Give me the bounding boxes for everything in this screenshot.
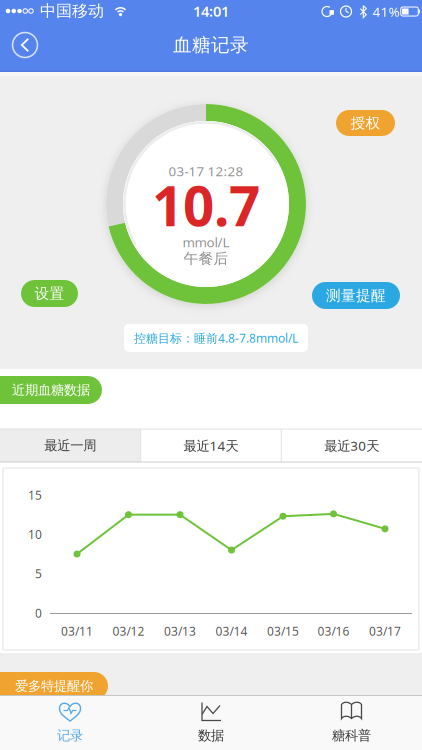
staticText: 糖科普 (332, 727, 371, 744)
staticText: 03-17 12:28 (168, 162, 243, 180)
staticText: 测量提醒 (326, 286, 386, 304)
staticText: 血糖记录 (173, 33, 249, 56)
staticText: 0 (35, 605, 42, 621)
staticText: 控糖目标：睡前4.8-7.8mmol/L (134, 330, 298, 346)
button[interactable]: 授权 (336, 110, 395, 136)
staticText: mmol/L (182, 233, 229, 251)
button[interactable]: 最近14天 (141, 429, 281, 462)
staticText: 记录 (57, 727, 83, 744)
staticText: 03/14 (215, 623, 247, 639)
staticText: 中国移动 (40, 1, 104, 21)
staticText: 03/17 (369, 623, 401, 639)
staticText: 15 (28, 487, 42, 503)
button[interactable]: 设置 (21, 280, 78, 307)
staticText: 10.7 (152, 169, 260, 241)
staticText: 近期血糖数据 (12, 382, 90, 398)
button[interactable]: 数据 (140, 695, 281, 750)
staticText: 03/12 (112, 623, 144, 639)
staticText: 03/15 (267, 623, 299, 639)
staticText: 爱多特提醒你 (15, 678, 93, 694)
staticText: 03/16 (317, 623, 349, 639)
staticText: 设置 (34, 284, 64, 302)
staticText: 41% (372, 3, 399, 20)
button[interactable]: 测量提醒 (312, 282, 400, 309)
staticText: 14:01 (193, 1, 229, 21)
staticText: 03/11 (61, 623, 93, 639)
button[interactable]: 糖科普 (281, 695, 422, 750)
staticText: 5 (35, 566, 42, 582)
staticText: 最近14天 (183, 437, 238, 454)
staticText: 最近30天 (324, 437, 379, 454)
staticText: 10 (28, 526, 42, 542)
button[interactable]: 最近30天 (282, 429, 422, 462)
button[interactable]: 最近一周 (0, 429, 140, 462)
staticText: 最近一周 (44, 437, 96, 454)
staticText: 数据 (198, 727, 224, 744)
button[interactable] (3, 23, 47, 67)
staticText: 授权 (350, 114, 380, 132)
button[interactable]: 记录 (0, 695, 140, 750)
staticText: 03/13 (164, 623, 196, 639)
staticText: 午餐后 (183, 249, 228, 267)
button[interactable]: 控糖目标：睡前4.8-7.8mmol/L (124, 324, 308, 352)
